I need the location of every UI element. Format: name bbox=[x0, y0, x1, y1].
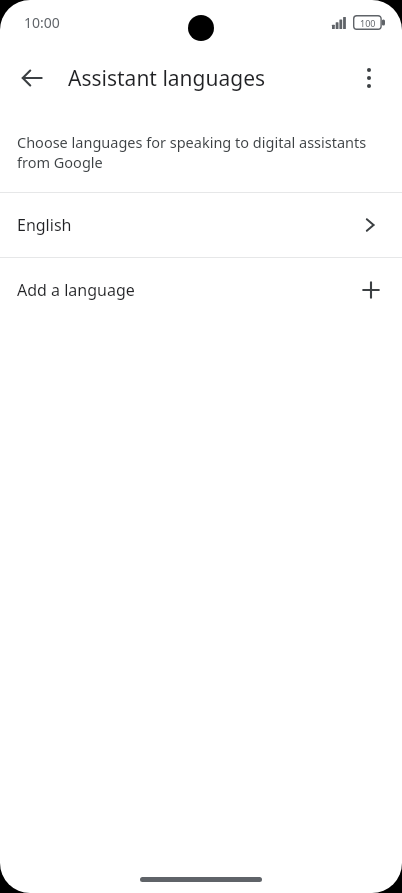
staticText: 10:00 bbox=[24, 13, 60, 32]
staticText: Choose languages for speaking to digital… bbox=[17, 132, 383, 173]
staticText: English bbox=[17, 214, 361, 236]
button[interactable]: Back bbox=[10, 56, 54, 100]
staticText: Add a language bbox=[17, 279, 361, 301]
button[interactable]: Open English language settings bbox=[0, 193, 402, 257]
button[interactable]: Add a language bbox=[0, 258, 402, 322]
staticText: Assistant languages bbox=[68, 64, 266, 93]
staticText: 100 bbox=[360, 17, 376, 29]
button[interactable]: More options bbox=[347, 56, 391, 100]
